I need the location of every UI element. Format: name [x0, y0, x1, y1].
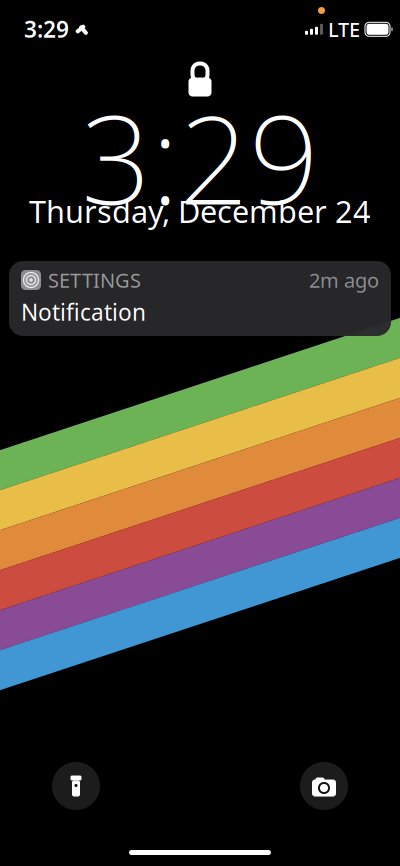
staticText: LTE [328, 16, 360, 43]
staticText: Thursday, December 24 [29, 191, 371, 231]
button[interactable]: SETTINGS [9, 261, 391, 336]
staticText: Notification [21, 297, 146, 327]
button[interactable]: Flashlight [52, 762, 100, 810]
staticText: 3:29 [81, 76, 319, 238]
staticText: 2m ago [309, 267, 379, 293]
button[interactable]: Camera [300, 762, 348, 810]
staticText: SETTINGS [48, 267, 141, 293]
staticText: 3:29 [24, 14, 69, 44]
